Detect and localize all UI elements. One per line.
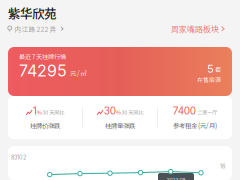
staticText: %	[37, 108, 42, 116]
staticText: 周家嘴路板块	[171, 23, 219, 35]
staticText: 30 天同比	[121, 109, 143, 116]
staticText: 5	[207, 62, 214, 75]
staticText: 元/㎡	[70, 68, 87, 78]
staticText: 16	[220, 163, 225, 170]
staticText: 挂牌价涨跌	[30, 121, 60, 130]
staticText: 在售房源	[197, 75, 221, 84]
staticText: 1	[33, 105, 37, 117]
staticText: 挂牌量涨跌	[105, 121, 135, 130]
staticText: 二室一厅	[197, 109, 217, 116]
staticText: 74295	[19, 61, 67, 80]
button[interactable]: 内江路 222 弄	[0, 0, 64, 34]
staticText: 内江路 222 弄	[14, 24, 56, 34]
button[interactable]: 周家嘴路板块	[0, 0, 225, 35]
staticText: 参考租金 (元/月)	[173, 121, 217, 130]
staticText: 30 天同比	[42, 109, 64, 116]
staticText: 30	[104, 105, 116, 117]
staticText: 2023.08	[166, 177, 185, 180]
staticText: 最近 7 天挂牌行情	[19, 52, 66, 61]
staticText: %	[116, 108, 121, 116]
staticText: 83102	[11, 154, 26, 161]
staticText: 紫华欣苑	[8, 4, 56, 22]
staticText: 套	[215, 65, 221, 74]
staticText: 7400	[173, 105, 196, 117]
